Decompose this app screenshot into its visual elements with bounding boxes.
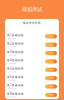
button[interactable]: 第8套模拟卷 bbox=[5, 91, 59, 99]
staticText: 第8套模拟卷 bbox=[7, 92, 24, 95]
staticText: 第7套模拟卷 bbox=[7, 84, 24, 87]
staticText: 100题 120分钟 bbox=[7, 79, 16, 81]
staticText: 开始答题 bbox=[49, 35, 53, 37]
button[interactable]: 第7套模拟卷 bbox=[5, 82, 59, 91]
staticText: 开始答题 bbox=[49, 44, 53, 45]
button[interactable]: 第1套模拟卷 bbox=[5, 32, 59, 41]
button[interactable]: 第4套模拟卷 bbox=[5, 57, 59, 66]
staticText: 100题 120分钟 bbox=[7, 96, 16, 98]
staticText: 开始答题 bbox=[49, 69, 53, 71]
staticText: 模拟考试列表 bbox=[23, 21, 41, 24]
button[interactable]: 第5套模拟卷 bbox=[5, 66, 59, 74]
staticText: 100题 120分钟 bbox=[7, 54, 16, 56]
button[interactable]: 第3套模拟卷 bbox=[5, 49, 59, 57]
staticText: 第1套模拟卷 bbox=[7, 33, 24, 37]
button[interactable]: 第6套模拟卷 bbox=[5, 74, 59, 82]
staticText: 100题 120分钟 bbox=[7, 63, 16, 64]
staticText: 开始答题 bbox=[49, 52, 53, 54]
button[interactable]: 第2套模拟卷 bbox=[5, 40, 59, 49]
staticText: 开始答题 bbox=[49, 94, 53, 96]
staticText: 第5套模拟卷 bbox=[7, 67, 24, 70]
staticText: 第6套模拟卷 bbox=[7, 75, 24, 79]
staticText: 100题 120分钟 bbox=[7, 71, 16, 73]
staticText: 100题 120分钟 bbox=[7, 46, 16, 48]
staticText: 模拟考试 bbox=[22, 6, 42, 13]
staticText: 开始答题 bbox=[49, 61, 53, 62]
staticText: 第2套模拟卷 bbox=[7, 42, 24, 45]
staticText: 开始答题 bbox=[49, 86, 53, 87]
staticText: 开始答题 bbox=[49, 77, 53, 79]
staticText: 100题 120分钟 bbox=[7, 88, 16, 89]
staticText: 第3套模拟卷 bbox=[7, 50, 24, 54]
staticText: 第4套模拟卷 bbox=[7, 58, 24, 62]
staticText: 100题 120分钟 bbox=[7, 37, 16, 39]
